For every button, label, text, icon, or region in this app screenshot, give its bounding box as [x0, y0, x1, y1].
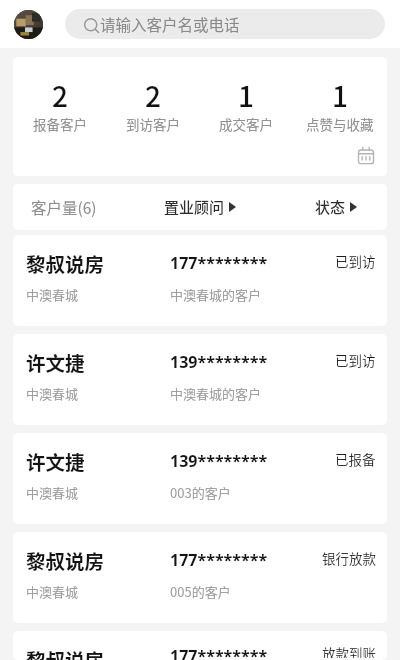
- staticText: 到访客户: [126, 114, 180, 134]
- button[interactable]: 黎叔说房: [13, 235, 387, 326]
- staticText: 成交客户: [219, 114, 273, 134]
- staticText: 报备客户: [33, 114, 87, 134]
- staticText: 黎叔说房: [26, 249, 170, 277]
- button[interactable]: 2: [106, 75, 199, 136]
- staticText: 中澳春城: [26, 384, 170, 403]
- staticText: 中澳春城: [26, 483, 170, 502]
- staticText: 003的客户: [170, 483, 231, 502]
- button[interactable]: 黎叔说房: [13, 532, 387, 623]
- staticText: 已到访: [335, 251, 376, 271]
- staticText: 点赞与收藏: [306, 114, 374, 134]
- staticText: 许文捷: [26, 348, 170, 376]
- staticText: 177********: [170, 252, 335, 274]
- staticText: 已报备: [335, 449, 376, 469]
- button[interactable]: 许文捷: [13, 433, 387, 524]
- button[interactable]: 许文捷: [13, 334, 387, 425]
- staticText: 1: [238, 75, 254, 116]
- staticText: 状态: [315, 196, 346, 218]
- staticText: 2: [145, 75, 161, 116]
- button[interactable]: Profile: [14, 10, 43, 39]
- staticText: 许文捷: [26, 447, 170, 475]
- staticText: 005的客户: [170, 582, 231, 601]
- staticText: 177********: [170, 549, 322, 571]
- staticText: 177********: [170, 645, 322, 660]
- staticText: 黎叔说房: [26, 645, 170, 660]
- staticText: 中澳春城的客户: [170, 285, 262, 304]
- staticText: 已到访: [335, 350, 376, 370]
- staticText: 中澳春城: [26, 285, 170, 304]
- button[interactable]: 1: [293, 75, 387, 136]
- button[interactable]: 请输入客户名或电话: [65, 9, 385, 39]
- staticText: 中澳春城的客户: [170, 384, 262, 403]
- button[interactable]: 黎叔说房: [13, 631, 387, 660]
- button[interactable]: 状态: [315, 196, 357, 218]
- staticText: 置业顾问: [164, 196, 225, 218]
- staticText: 2: [52, 75, 68, 116]
- staticText: 中澳春城: [26, 582, 170, 601]
- button[interactable]: 1: [199, 75, 293, 136]
- button[interactable]: Calendar: [352, 141, 380, 169]
- staticText: 139********: [170, 450, 335, 472]
- button[interactable]: 置业顾问: [164, 196, 236, 218]
- staticText: 请输入客户名或电话: [100, 13, 240, 35]
- staticText: 客户量(6): [31, 196, 97, 218]
- staticText: 放款到账: [322, 643, 376, 658]
- staticText: 银行放款: [322, 548, 376, 568]
- staticText: 1: [332, 75, 348, 116]
- staticText: 139********: [170, 351, 335, 373]
- button[interactable]: 2: [13, 75, 106, 136]
- staticText: 黎叔说房: [26, 546, 170, 574]
